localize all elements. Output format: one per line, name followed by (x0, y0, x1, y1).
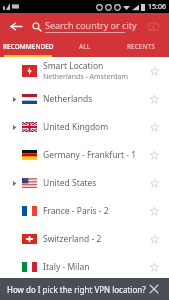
staticText: ALL (79, 42, 91, 51)
staticText: How do I pick the right VPN location? (7, 284, 146, 295)
staticText: Netherlands (43, 93, 93, 105)
button[interactable]: Favorite (145, 90, 163, 108)
button[interactable]: Favorite (145, 146, 163, 164)
button[interactable]: RECOMMENDED (0, 38, 57, 55)
button[interactable]: Favorite (145, 174, 163, 192)
button[interactable]: Smart Location (0, 57, 169, 85)
button[interactable]: Favorite (145, 62, 163, 80)
button[interactable]: Favorite (145, 202, 163, 220)
staticText: RECENTS (127, 42, 155, 51)
button[interactable]: Favorite (145, 282, 163, 300)
staticText: Germany - Frankfurt - 1 (43, 149, 137, 161)
button[interactable]: Search country or city (32, 19, 143, 33)
button[interactable]: How do I pick the right VPN location? (0, 278, 169, 300)
button[interactable]: Back (6, 16, 26, 36)
button[interactable]: Netherlands (0, 85, 169, 113)
button[interactable]: Sweden (0, 281, 169, 300)
staticText: Italy - Milan (43, 261, 90, 273)
staticText: Sweden (43, 285, 75, 297)
staticText: Switzerland - 2 (43, 233, 102, 245)
button[interactable]: France - Paris - 2 (0, 197, 169, 225)
staticText: RECOMMENDED (3, 42, 54, 51)
button[interactable]: Switzerland - 2 (0, 225, 169, 253)
button[interactable]: Favorite (145, 230, 163, 248)
button[interactable]: ALL (57, 38, 113, 55)
button[interactable]: United States (0, 169, 169, 197)
staticText: Search country or city (45, 19, 137, 31)
button[interactable]: United Kingdom (0, 113, 169, 141)
button[interactable]: Favorite (145, 258, 163, 276)
button[interactable]: Germany - Frankfurt - 1 (0, 141, 169, 169)
staticText: United States (43, 177, 97, 189)
staticText: Netherlands - Amsterdam (43, 72, 128, 82)
staticText: United Kingdom (43, 121, 109, 133)
staticText: Smart Location (43, 60, 104, 72)
staticText: France - Paris - 2 (43, 205, 109, 217)
button[interactable]: Italy - Milan (0, 253, 169, 281)
button[interactable]: RECENTS (113, 38, 169, 55)
button[interactable]: Dismiss (146, 281, 162, 297)
button[interactable]: Help (143, 16, 163, 36)
staticText: 15:06 (148, 2, 166, 12)
button[interactable]: Favorite (145, 118, 163, 136)
